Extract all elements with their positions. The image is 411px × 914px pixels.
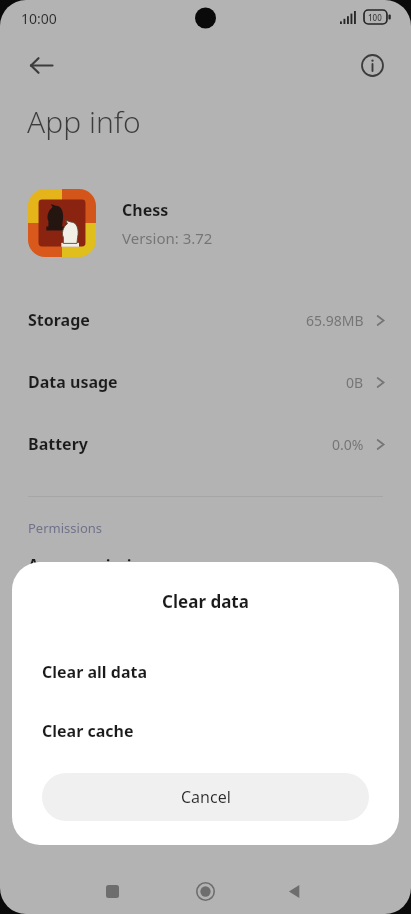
- button[interactable]: Battery: [0, 413, 411, 475]
- staticText: 100: [368, 12, 382, 23]
- staticText: App permissions: [28, 554, 160, 576]
- staticText: 65.98MB: [306, 311, 364, 330]
- staticText: 0B: [346, 373, 364, 392]
- staticText: Clear data: [12, 590, 399, 613]
- staticText: Permissions: [28, 519, 103, 537]
- button[interactable]: Back: [272, 869, 316, 913]
- button[interactable]: Data usage: [0, 351, 411, 413]
- button[interactable]: Clear cache: [12, 701, 399, 760]
- staticText: Clear cache: [42, 720, 134, 742]
- staticText: Storage: [28, 309, 90, 331]
- staticText: Clear all data: [42, 661, 147, 683]
- staticText: Version: 3.72: [122, 228, 213, 248]
- button[interactable]: Clear all data: [12, 642, 399, 701]
- button[interactable]: Back: [18, 42, 64, 88]
- staticText: Data usage: [28, 371, 118, 393]
- staticText: Chess: [122, 199, 169, 221]
- button[interactable]: Cancel: [42, 773, 369, 821]
- button[interactable]: Storage: [0, 289, 411, 351]
- staticText: 0.0%: [332, 435, 364, 454]
- staticText: App info: [27, 101, 141, 142]
- staticText: Cancel: [181, 786, 231, 808]
- button[interactable]: Recent apps: [90, 869, 134, 913]
- staticText: Battery: [28, 433, 88, 455]
- staticText: 10:00: [21, 9, 57, 28]
- button[interactable]: App details: [349, 42, 395, 88]
- button[interactable]: Home: [183, 869, 227, 913]
